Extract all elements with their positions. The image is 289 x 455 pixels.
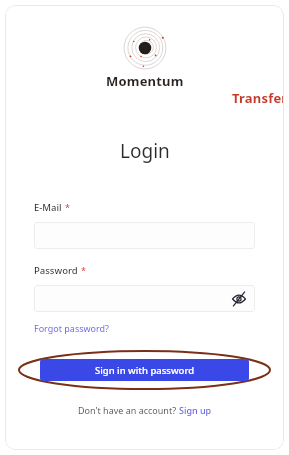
button[interactable]: Show password (34, 285, 255, 312)
staticText: Login (120, 138, 170, 164)
staticText: * (81, 264, 86, 276)
staticText: Don't have an account? (78, 404, 179, 416)
button[interactable] (34, 222, 255, 249)
button[interactable]: Show password (231, 291, 247, 307)
button[interactable]: Sign in with password (40, 359, 249, 381)
staticText: Password (34, 264, 78, 277)
button[interactable]: Sign up (179, 404, 212, 416)
staticText: * (65, 201, 70, 213)
staticText: E-Mail (34, 201, 62, 214)
staticText: Sign in with password (95, 364, 195, 377)
staticText: Momentum (106, 72, 184, 90)
button[interactable]: Forgot password? (34, 321, 110, 335)
staticText: Transfer (232, 89, 284, 107)
